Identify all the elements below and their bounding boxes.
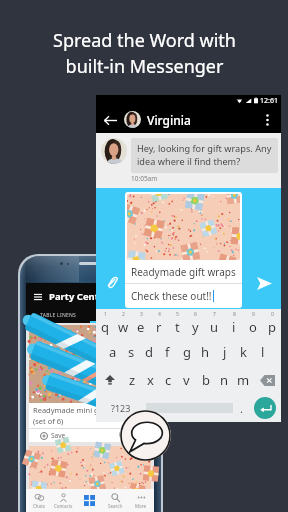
staticText: Contacts — [54, 503, 73, 509]
button[interactable]: x — [141, 366, 159, 394]
button[interactable]: b — [196, 366, 215, 394]
button[interactable]: More options — [258, 111, 276, 129]
staticText: y — [192, 318, 199, 336]
staticText: a — [109, 343, 117, 361]
staticText: Readymade mini gift wraps (set of 6) — [33, 405, 130, 426]
staticText: 0 — [271, 311, 274, 318]
staticText: 1 — [104, 311, 107, 318]
staticText: 8 — [233, 311, 236, 318]
button[interactable]: v — [177, 366, 196, 394]
button[interactable]: 4 — [150, 309, 168, 338]
button[interactable]: 8 — [224, 309, 243, 338]
button[interactable]: d — [140, 338, 158, 366]
staticText: 2 — [122, 311, 125, 318]
staticText: w — [118, 318, 129, 336]
button[interactable]: 9 — [243, 309, 262, 338]
staticText: m — [237, 371, 250, 389]
staticText: Virginia — [147, 112, 191, 128]
button[interactable]: 3 — [132, 309, 150, 338]
staticText: n — [220, 371, 229, 389]
staticText: Readymade gift wraps — [131, 265, 236, 279]
staticText: 5 — [176, 311, 179, 318]
staticText: c — [165, 371, 172, 389]
staticText: 3 — [140, 311, 143, 318]
button[interactable]: DECORATIONS — [90, 310, 154, 321]
staticText: e — [137, 318, 145, 336]
button[interactable]: Check these out!! — [125, 284, 242, 308]
staticText: d — [145, 343, 153, 361]
button[interactable]: More — [128, 489, 154, 512]
button[interactable]: a — [104, 338, 122, 366]
button[interactable]: . — [233, 394, 249, 422]
button[interactable]: TABLE LINENS — [26, 310, 90, 321]
button[interactable]: Apps — [76, 489, 102, 512]
button[interactable]: n — [215, 366, 234, 394]
button[interactable]: Back — [102, 112, 118, 128]
staticText: Save — [51, 431, 66, 440]
other: Menu — [34, 293, 42, 301]
staticText: i — [232, 318, 236, 336]
button[interactable]: 0 — [262, 309, 281, 338]
button[interactable]: 7 — [205, 309, 224, 338]
staticText: r — [156, 318, 162, 336]
staticText: 4 — [158, 311, 161, 318]
staticText: f — [165, 343, 170, 361]
button[interactable]: g — [177, 338, 196, 366]
button[interactable]: ?123 — [96, 394, 146, 422]
staticText: Hey, looking for gift wraps. Any idea wh… — [137, 142, 272, 168]
button[interactable]: z — [123, 366, 141, 394]
staticText: ?123 — [111, 402, 131, 414]
button[interactable]: 5 — [168, 309, 186, 338]
staticText: 10:05am — [131, 174, 158, 183]
button[interactable]: h — [196, 338, 215, 366]
button[interactable]: k — [234, 338, 253, 366]
button[interactable]: f — [158, 338, 177, 366]
button[interactable]: Attach — [103, 274, 120, 291]
button[interactable]: 6 — [186, 309, 205, 338]
button[interactable]: m — [234, 366, 253, 394]
staticText: q — [101, 318, 109, 336]
button[interactable]: Send — [255, 274, 273, 292]
staticText: 12:61 — [260, 96, 278, 106]
staticText: j — [223, 343, 227, 361]
staticText: Chats — [33, 503, 45, 509]
staticText: 9 — [252, 311, 255, 318]
button[interactable]: l — [253, 338, 272, 366]
button[interactable]: Messenger — [120, 410, 171, 461]
staticText: Party Central — [49, 290, 112, 303]
button[interactable]: c — [159, 366, 177, 394]
staticText: k — [240, 343, 247, 361]
staticText: DECORATIONS — [103, 312, 141, 319]
button[interactable]: Contacts — [51, 489, 76, 512]
staticText: TABLE LINENS — [40, 312, 77, 319]
button[interactable]: j — [215, 338, 234, 366]
staticText: l — [261, 343, 265, 361]
button[interactable] — [146, 403, 233, 413]
staticText: More — [135, 503, 147, 509]
staticText: Search — [108, 503, 123, 509]
button[interactable]: Menu — [26, 283, 154, 310]
staticText: o — [249, 318, 257, 336]
button[interactable]: 2 — [114, 309, 132, 338]
staticText: t — [175, 318, 180, 336]
other: Comment — [120, 431, 129, 440]
staticText: x — [147, 371, 154, 389]
button[interactable]: Shift — [96, 366, 123, 394]
staticText: 7 — [213, 311, 216, 318]
staticText: g — [183, 343, 191, 361]
button[interactable]: Chats — [26, 489, 51, 512]
button[interactable]: 1 — [96, 309, 114, 338]
staticText: p — [268, 318, 276, 336]
staticText: h — [201, 343, 210, 361]
staticText: s — [128, 343, 135, 361]
button[interactable]: s — [122, 338, 140, 366]
staticText: Spread the Word with built-in Messenger — [53, 28, 236, 79]
button[interactable]: Save — [29, 429, 151, 442]
staticText: z — [129, 371, 136, 389]
staticText: u — [210, 318, 219, 336]
button[interactable]: Backspace — [253, 366, 281, 394]
staticText: v — [183, 371, 190, 389]
button[interactable]: Search — [102, 489, 128, 512]
staticText: . — [240, 401, 243, 416]
button[interactable]: Enter — [254, 397, 276, 419]
